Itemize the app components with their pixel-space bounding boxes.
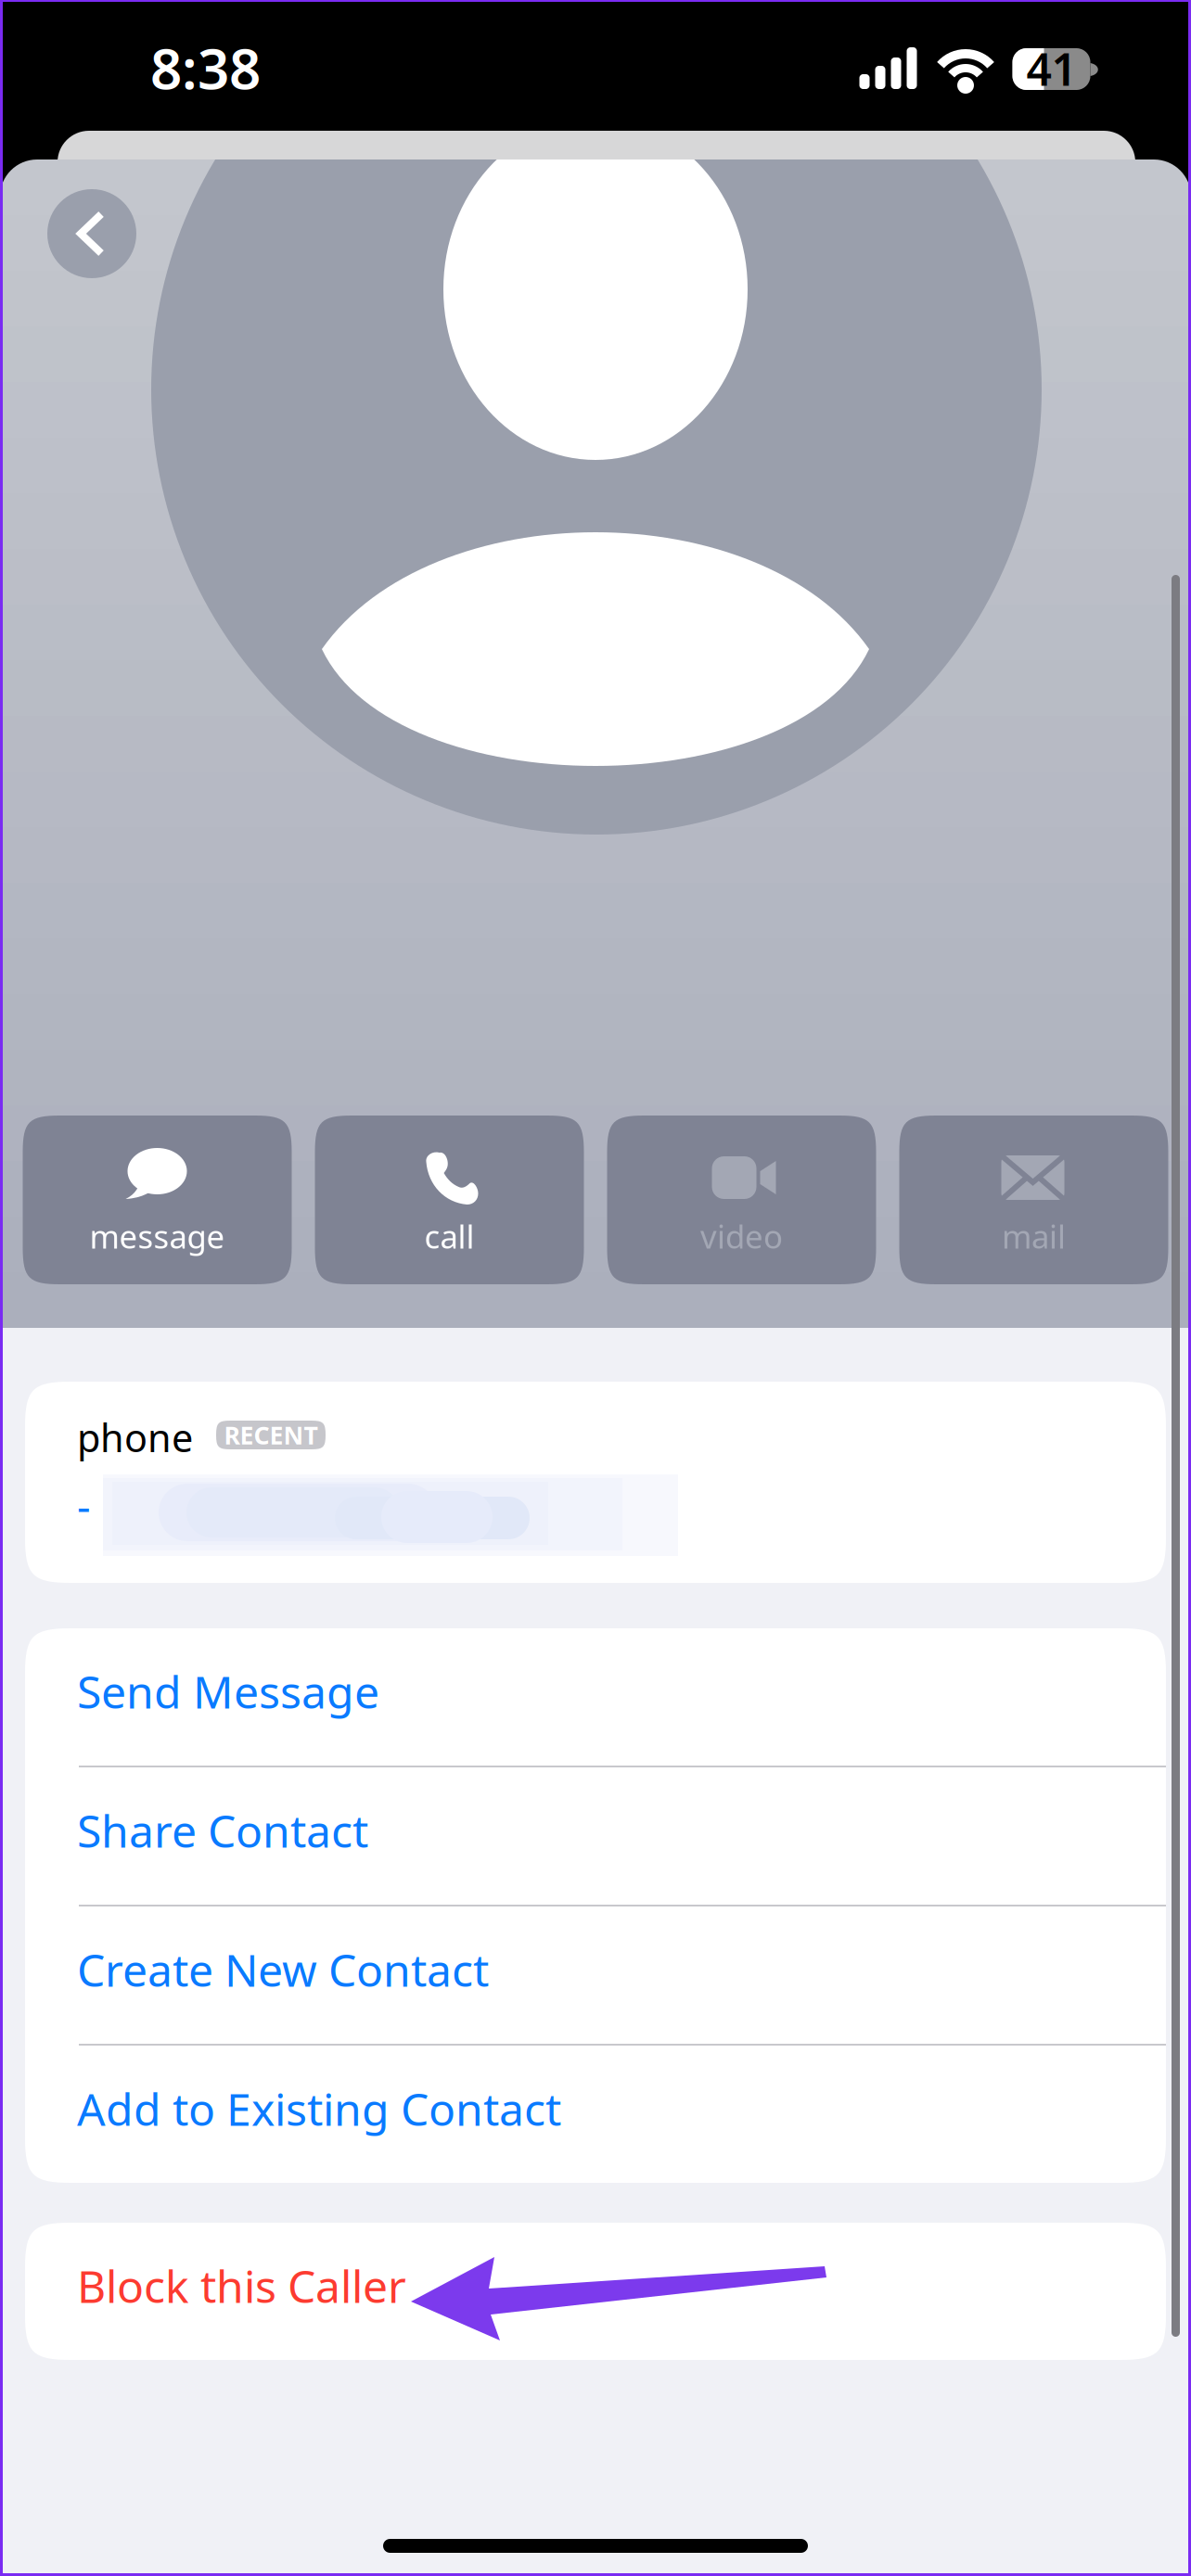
button[interactable]: call [315,1116,584,1284]
staticText: Block this Caller [77,2256,406,2315]
staticText: - [77,1477,91,1533]
button[interactable]: video [607,1116,876,1284]
staticText: call [424,1215,474,1257]
button[interactable]: Back [47,189,136,278]
button[interactable]: Block this Caller [25,2223,1166,2360]
staticText: 8:38 [150,31,261,105]
button[interactable]: phone [25,1382,1166,1583]
staticText: Share Contact [77,1801,368,1860]
staticText: Create New Contact [77,1940,489,1999]
button[interactable]: message [23,1116,292,1284]
staticText: 41 [1026,39,1076,98]
staticText: video [700,1215,783,1257]
button[interactable]: Share Contact [25,1767,1166,1905]
staticText: mail [1002,1215,1066,1257]
button[interactable]: Add to Existing Contact [25,2046,1166,2183]
button[interactable]: mail [899,1116,1168,1284]
staticText: message [90,1215,225,1257]
staticText: Add to Existing Contact [77,2079,561,2138]
staticText: phone [77,1412,193,1463]
staticText: Send Message [77,1662,379,1721]
staticText: RECENT [224,1419,318,1451]
button[interactable]: Create New Contact [25,1906,1166,2044]
button[interactable]: Send Message [25,1628,1166,1766]
